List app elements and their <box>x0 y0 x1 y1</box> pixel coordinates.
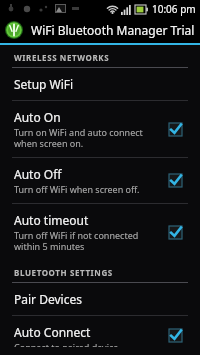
button[interactable]: Toggle setting <box>167 327 184 344</box>
staticText: WiFi Bluetooth Manager Trial <box>31 22 195 38</box>
staticText: Auto On <box>14 109 61 125</box>
button[interactable]: Toggle setting <box>167 121 184 138</box>
staticText: Auto Off <box>14 166 62 182</box>
button[interactable]: Auto On <box>0 101 200 157</box>
staticText: WIRELESS NETWORKS <box>14 52 110 63</box>
button[interactable]: Auto Off <box>0 158 200 203</box>
staticText: BLUETOOTH SETTINGS <box>14 267 113 278</box>
staticText: Auto timeout <box>14 212 89 228</box>
button[interactable]: Toggle setting <box>167 172 184 189</box>
staticText: Turn off WiFi if not connected within 5 … <box>14 229 139 252</box>
button[interactable]: Pair Devices <box>0 283 200 315</box>
button[interactable]: Toggle setting <box>167 224 184 241</box>
staticText: Auto Connect <box>14 324 91 340</box>
button[interactable]: Auto Connect <box>0 316 200 355</box>
staticText: 10:06 pm <box>152 2 196 16</box>
staticText: Connect to paired device automatically f… <box>14 341 137 347</box>
staticText: Pair Devices <box>14 291 82 307</box>
staticText: Turn on WiFi and auto connect when scree… <box>14 126 143 149</box>
button[interactable]: Setup WiFi <box>0 68 200 100</box>
staticText: Turn off WiFi when screen off. <box>14 183 140 195</box>
staticText: Setup WiFi <box>14 76 74 92</box>
button[interactable]: Auto timeout <box>0 204 200 260</box>
